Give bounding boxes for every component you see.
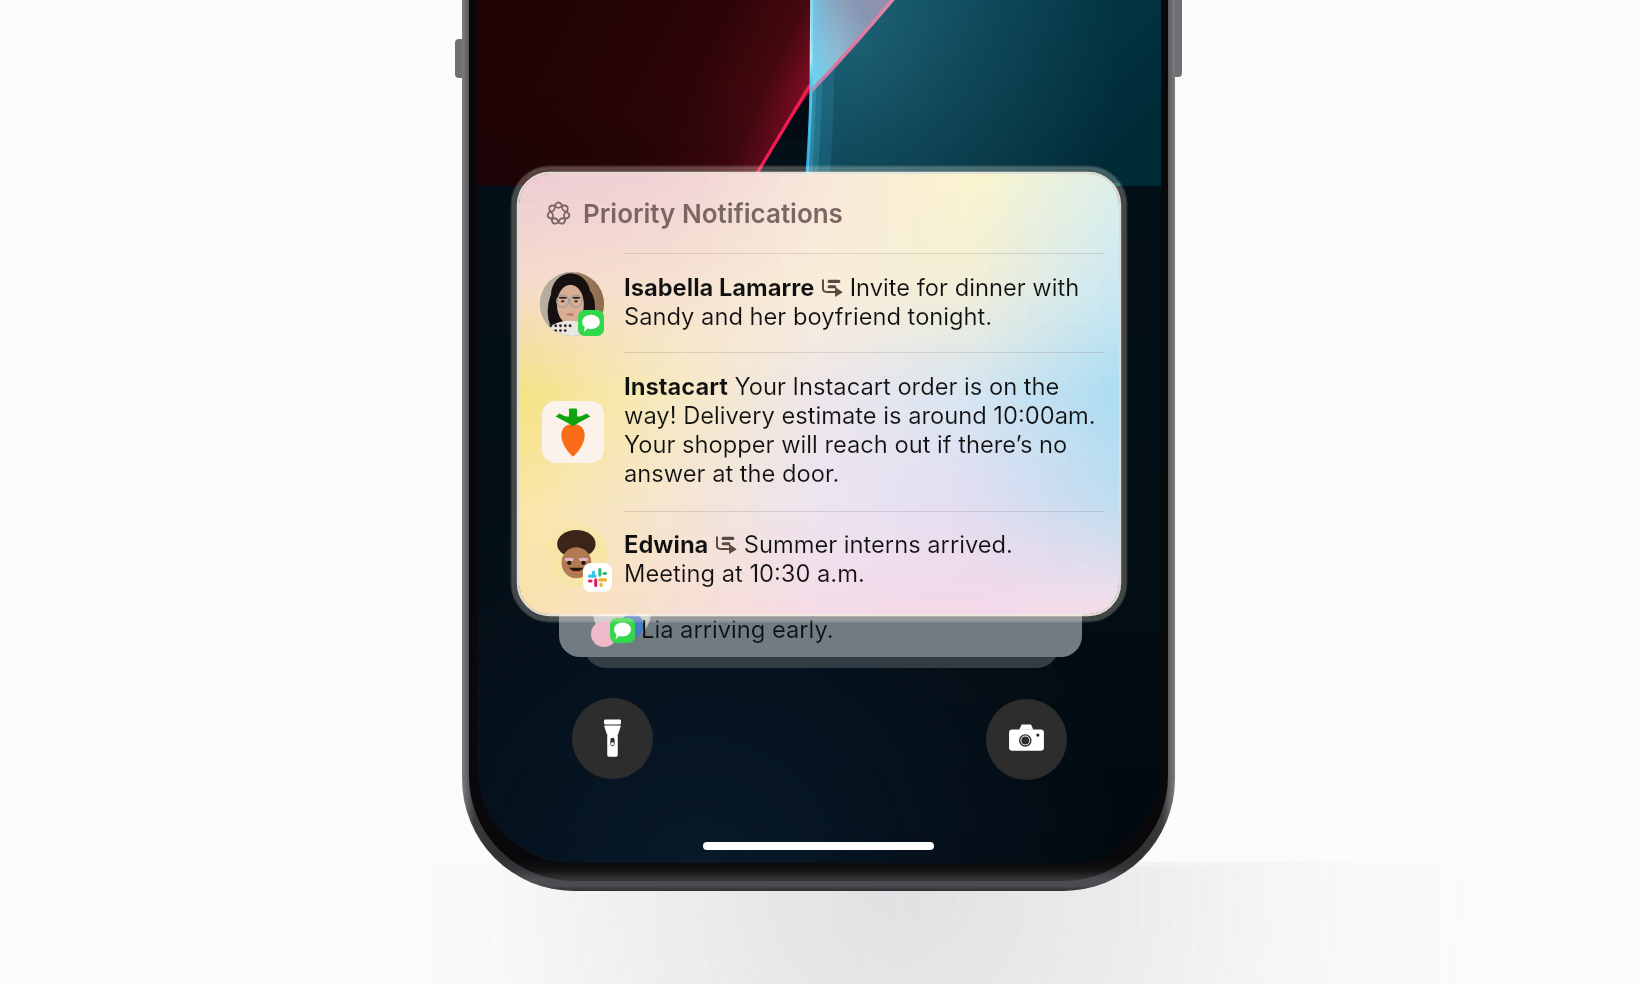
button[interactable]: Priority Notifications [519, 174, 1119, 614]
button[interactable]: Lia arriving early. [559, 586, 1082, 657]
button[interactable]: Camera [986, 699, 1067, 780]
staticText: Lia arriving early. [641, 615, 834, 644]
staticText: Priority Notifications [583, 198, 843, 229]
staticText: Instacart Your Instacart order is on the… [624, 371, 1105, 487]
button[interactable]: Flashlight [572, 698, 653, 779]
staticText: Isabella Lamarre ↪ Invite for dinner wit… [624, 272, 1105, 330]
staticText: Edwina ↪ Summer interns arrived. Meeting… [624, 529, 1105, 587]
